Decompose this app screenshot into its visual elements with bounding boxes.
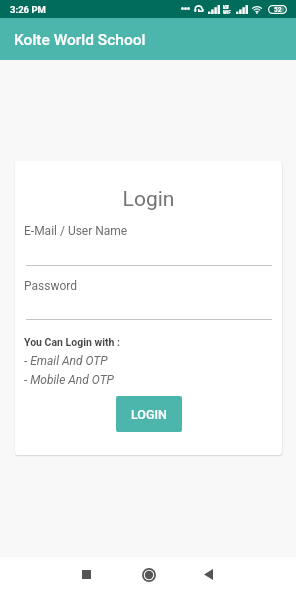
staticText: - Email And OTP bbox=[24, 354, 108, 368]
button[interactable]: LOGIN bbox=[116, 396, 182, 432]
staticText: LTE bbox=[223, 4, 231, 13]
staticText: Login bbox=[15, 187, 282, 212]
button[interactable]: Back bbox=[188, 557, 229, 592]
staticText: You Can Login with : bbox=[24, 336, 120, 348]
staticText: LOGIN bbox=[131, 407, 167, 422]
staticText: Password bbox=[24, 279, 78, 293]
staticText: 52 bbox=[274, 6, 282, 14]
staticText: 3:26 PM bbox=[10, 4, 46, 15]
button[interactable]: Home bbox=[128, 557, 169, 592]
staticText: - Mobile And OTP bbox=[24, 373, 114, 387]
staticText: Kolte World School bbox=[14, 31, 146, 49]
staticText: VoWiFi bbox=[223, 5, 231, 14]
button[interactable]: Recents bbox=[66, 557, 107, 592]
staticText: E-Mail / User Name bbox=[24, 224, 128, 238]
